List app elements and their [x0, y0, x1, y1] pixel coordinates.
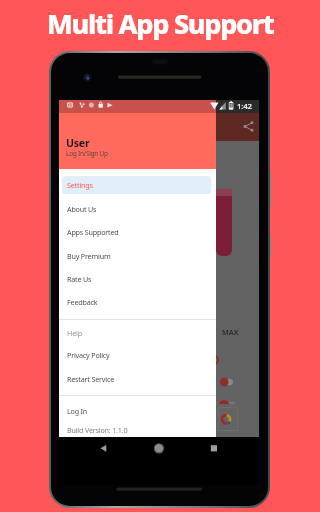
staticText: Apps Supported [67, 227, 119, 237]
button[interactable]: About Us [59, 197, 216, 220]
staticText: Settings [67, 180, 93, 190]
button[interactable]: Settings [59, 173, 216, 196]
button[interactable]: Feedback [59, 290, 216, 313]
button[interactable]: Help [59, 321, 216, 344]
staticText: MAX [222, 327, 239, 337]
button[interactable]: Restart Service [59, 367, 216, 390]
staticText: Restart Service [67, 374, 115, 384]
staticText: Privacy Policy [67, 350, 110, 360]
staticText: Log In [67, 406, 88, 416]
staticText: About Us [67, 204, 97, 214]
staticText: Buy Premium [67, 251, 111, 261]
staticText: Help [67, 328, 82, 338]
staticText: Build Version: 1.1.0 [67, 425, 128, 435]
staticText: 1:42 [237, 101, 252, 112]
staticText: Rate Us [67, 274, 92, 284]
button[interactable]: Buy Premium [59, 244, 216, 267]
button[interactable]: Privacy Policy [59, 343, 216, 366]
staticText: User [66, 136, 90, 150]
button[interactable]: Share [243, 121, 254, 132]
button[interactable]: Build Version: 1.1.0 [59, 418, 216, 441]
button[interactable]: Apps Supported [59, 220, 216, 243]
button[interactable]: Rate Us [59, 267, 216, 290]
staticText: Log In/Sign Up [66, 149, 108, 158]
staticText: Multi App Support [47, 5, 274, 42]
button[interactable]: Log In [59, 399, 216, 422]
staticText: Feedback [67, 297, 98, 307]
